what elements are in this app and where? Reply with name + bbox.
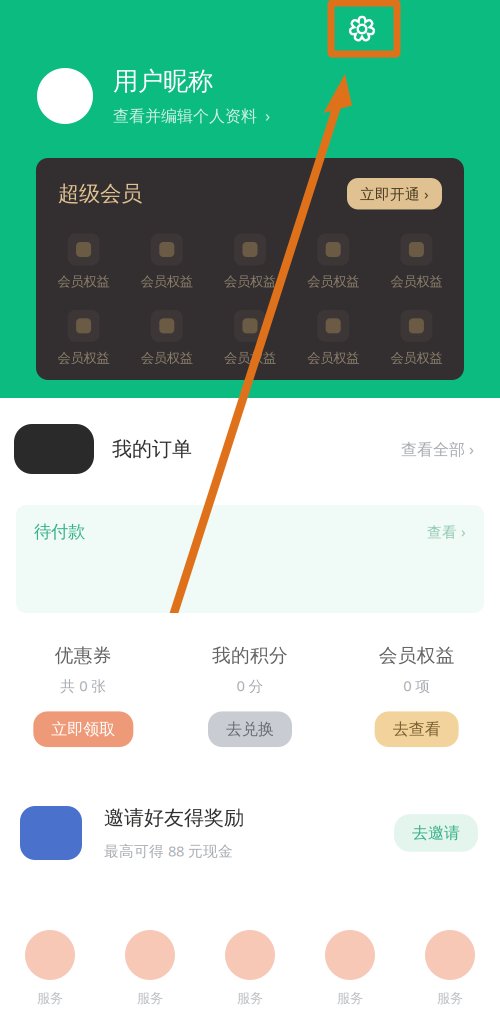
staticText: 立即领取	[51, 719, 115, 739]
staticText: 0 项	[403, 676, 430, 695]
button[interactable]: 会员权益	[208, 233, 292, 290]
staticText: 会员权益	[390, 273, 442, 290]
staticText: 会员权益	[58, 350, 110, 366]
staticText: 0 分	[236, 676, 263, 695]
button[interactable]: Service shortcut	[300, 900, 400, 1018]
staticText: 会员权益	[141, 350, 193, 366]
button[interactable]: 我的积分	[167, 618, 333, 766]
staticText: 会员权益	[141, 273, 193, 290]
staticText: 去查看	[393, 719, 441, 739]
staticText: 共 0 张	[60, 676, 106, 695]
button[interactable]: 我的订单	[0, 398, 500, 500]
staticText: 服务	[37, 990, 63, 1006]
staticText: 优惠券	[55, 644, 112, 667]
staticText: 我的积分	[212, 644, 288, 667]
staticText: 查看全部 ›	[401, 438, 474, 460]
staticText: 超级会员	[58, 181, 142, 207]
button[interactable]: 会员权益	[375, 310, 458, 366]
staticText: 会员权益	[379, 644, 455, 667]
button[interactable]: 会员权益	[42, 233, 125, 290]
staticText: 会员权益	[58, 273, 110, 290]
button[interactable]: 会员权益	[333, 618, 500, 766]
staticText: 查看 ›	[427, 522, 466, 541]
button[interactable]: Service shortcut	[400, 900, 500, 1018]
staticText: 邀请好友得奖励	[104, 805, 244, 830]
staticText: 会员权益	[390, 350, 442, 366]
staticText: 服务	[337, 990, 363, 1006]
button[interactable]: 会员权益	[292, 310, 375, 366]
staticText: 会员权益	[307, 350, 359, 366]
staticText: 会员权益	[224, 350, 276, 366]
staticText: 服务	[237, 990, 263, 1006]
button[interactable]: 会员权益	[42, 310, 125, 366]
staticText: 服务	[437, 990, 463, 1006]
button[interactable]: 优惠券	[0, 618, 167, 766]
staticText: 用户昵称	[113, 66, 213, 97]
button[interactable]: 立即开通 ›	[347, 178, 442, 209]
staticText: 去邀请	[412, 823, 460, 843]
button[interactable]: 会员权益	[375, 233, 458, 290]
button[interactable]: Service shortcut	[100, 900, 200, 1018]
button[interactable]: 邀请好友得奖励	[0, 766, 500, 900]
button[interactable]: 会员权益	[292, 233, 375, 290]
staticText: 服务	[137, 990, 163, 1006]
button[interactable]: 会员权益	[125, 233, 208, 290]
button[interactable]: Profile photo	[37, 68, 93, 124]
button[interactable]: Service shortcut	[200, 900, 300, 1018]
staticText: 会员权益	[307, 273, 359, 290]
staticText: 最高可得 88 元现金	[104, 841, 233, 860]
staticText: 立即开通 ›	[360, 184, 429, 203]
staticText: 查看并编辑个人资料 ›	[113, 105, 270, 126]
staticText: 会员权益	[224, 273, 276, 290]
button[interactable]: 会员权益	[125, 310, 208, 366]
button[interactable]: 会员权益	[208, 310, 292, 366]
button[interactable]: Service shortcut	[0, 900, 100, 1018]
staticText: 待付款	[34, 521, 85, 542]
button[interactable]: Settings	[334, 0, 390, 58]
staticText: 我的订单	[112, 437, 192, 461]
staticText: 去兑换	[226, 719, 274, 739]
